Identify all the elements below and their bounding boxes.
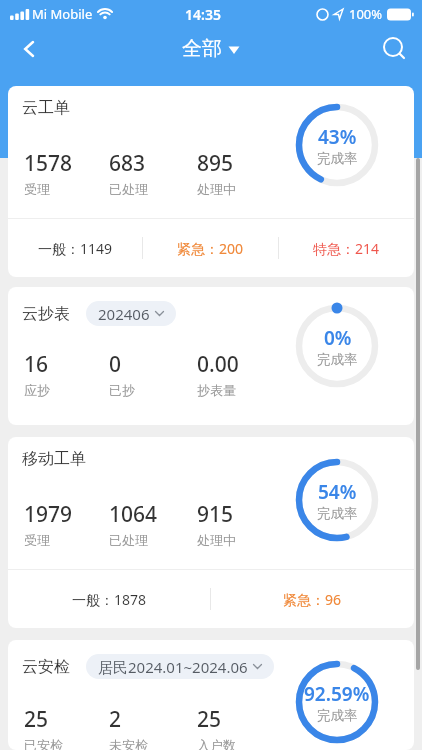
staticText: 895 [197, 149, 234, 178]
staticText: 43% [318, 124, 357, 150]
staticText: 紧急：200 [177, 239, 244, 258]
staticText: 16 [24, 350, 49, 379]
staticText: 已处理 [109, 181, 148, 197]
staticText: 应抄 [24, 382, 50, 398]
button[interactable]: 紧急：200 [143, 219, 278, 277]
staticText: 紧急：96 [283, 590, 342, 609]
button[interactable]: 全部 [182, 36, 240, 61]
staticText: 1979 [24, 500, 73, 529]
staticText: 云工单 [22, 98, 70, 118]
staticText: 云安检 [22, 657, 70, 677]
staticText: 完成率 [317, 505, 358, 522]
staticText: 100% [349, 5, 383, 23]
staticText: 完成率 [317, 707, 358, 724]
staticText: 915 [197, 500, 234, 529]
staticText: 1578 [24, 149, 73, 178]
staticText: 抄表量 [197, 382, 236, 398]
staticText: 完成率 [317, 351, 358, 368]
staticText: 14:35 [185, 5, 221, 24]
button[interactable]: 云抄表 [8, 287, 414, 425]
staticText: 0% [324, 325, 352, 351]
staticText: 未安检 [109, 737, 148, 750]
button[interactable]: 移动工单 [8, 437, 414, 628]
staticText: Mi Mobile [32, 5, 93, 23]
staticText: 入户数 [197, 737, 236, 750]
staticText: 受理 [24, 532, 50, 548]
button[interactable]: 一般：1149 [8, 219, 142, 277]
staticText: 0 [109, 350, 122, 379]
staticText: 已抄 [109, 382, 135, 398]
staticText: 全部 [182, 36, 222, 61]
staticText: 处理中 [197, 532, 236, 548]
staticText: 受理 [24, 181, 50, 197]
button[interactable]: 一般：1878 [8, 570, 210, 628]
button[interactable] [14, 34, 44, 64]
staticText: 已安检 [24, 737, 63, 750]
staticText: 202406 [98, 304, 150, 324]
button[interactable] [380, 34, 410, 64]
staticText: 683 [109, 149, 146, 178]
button[interactable]: 居民2024.01~2024.06 [86, 654, 274, 679]
staticText: 完成率 [317, 150, 358, 167]
staticText: 云抄表 [22, 304, 70, 324]
button[interactable]: 云工单 [8, 86, 414, 277]
staticText: 0.00 [197, 350, 239, 379]
staticText: 2 [109, 705, 122, 734]
staticText: 已处理 [109, 532, 148, 548]
button[interactable]: 特急：214 [279, 219, 414, 277]
button[interactable]: 云安检 [8, 640, 414, 750]
staticText: 一般：1878 [72, 590, 147, 609]
staticText: 1064 [109, 500, 158, 529]
staticText: 一般：1149 [38, 239, 113, 258]
staticText: 92.59% [304, 681, 370, 707]
button[interactable]: 紧急：96 [211, 570, 414, 628]
staticText: 54% [318, 479, 357, 505]
staticText: 移动工单 [22, 449, 86, 469]
staticText: 处理中 [197, 181, 236, 197]
staticText: 特急：214 [313, 239, 380, 258]
staticText: 25 [24, 705, 49, 734]
button[interactable]: 202406 [86, 301, 176, 326]
staticText: 25 [197, 705, 222, 734]
staticText: 居民2024.01~2024.06 [98, 657, 248, 677]
